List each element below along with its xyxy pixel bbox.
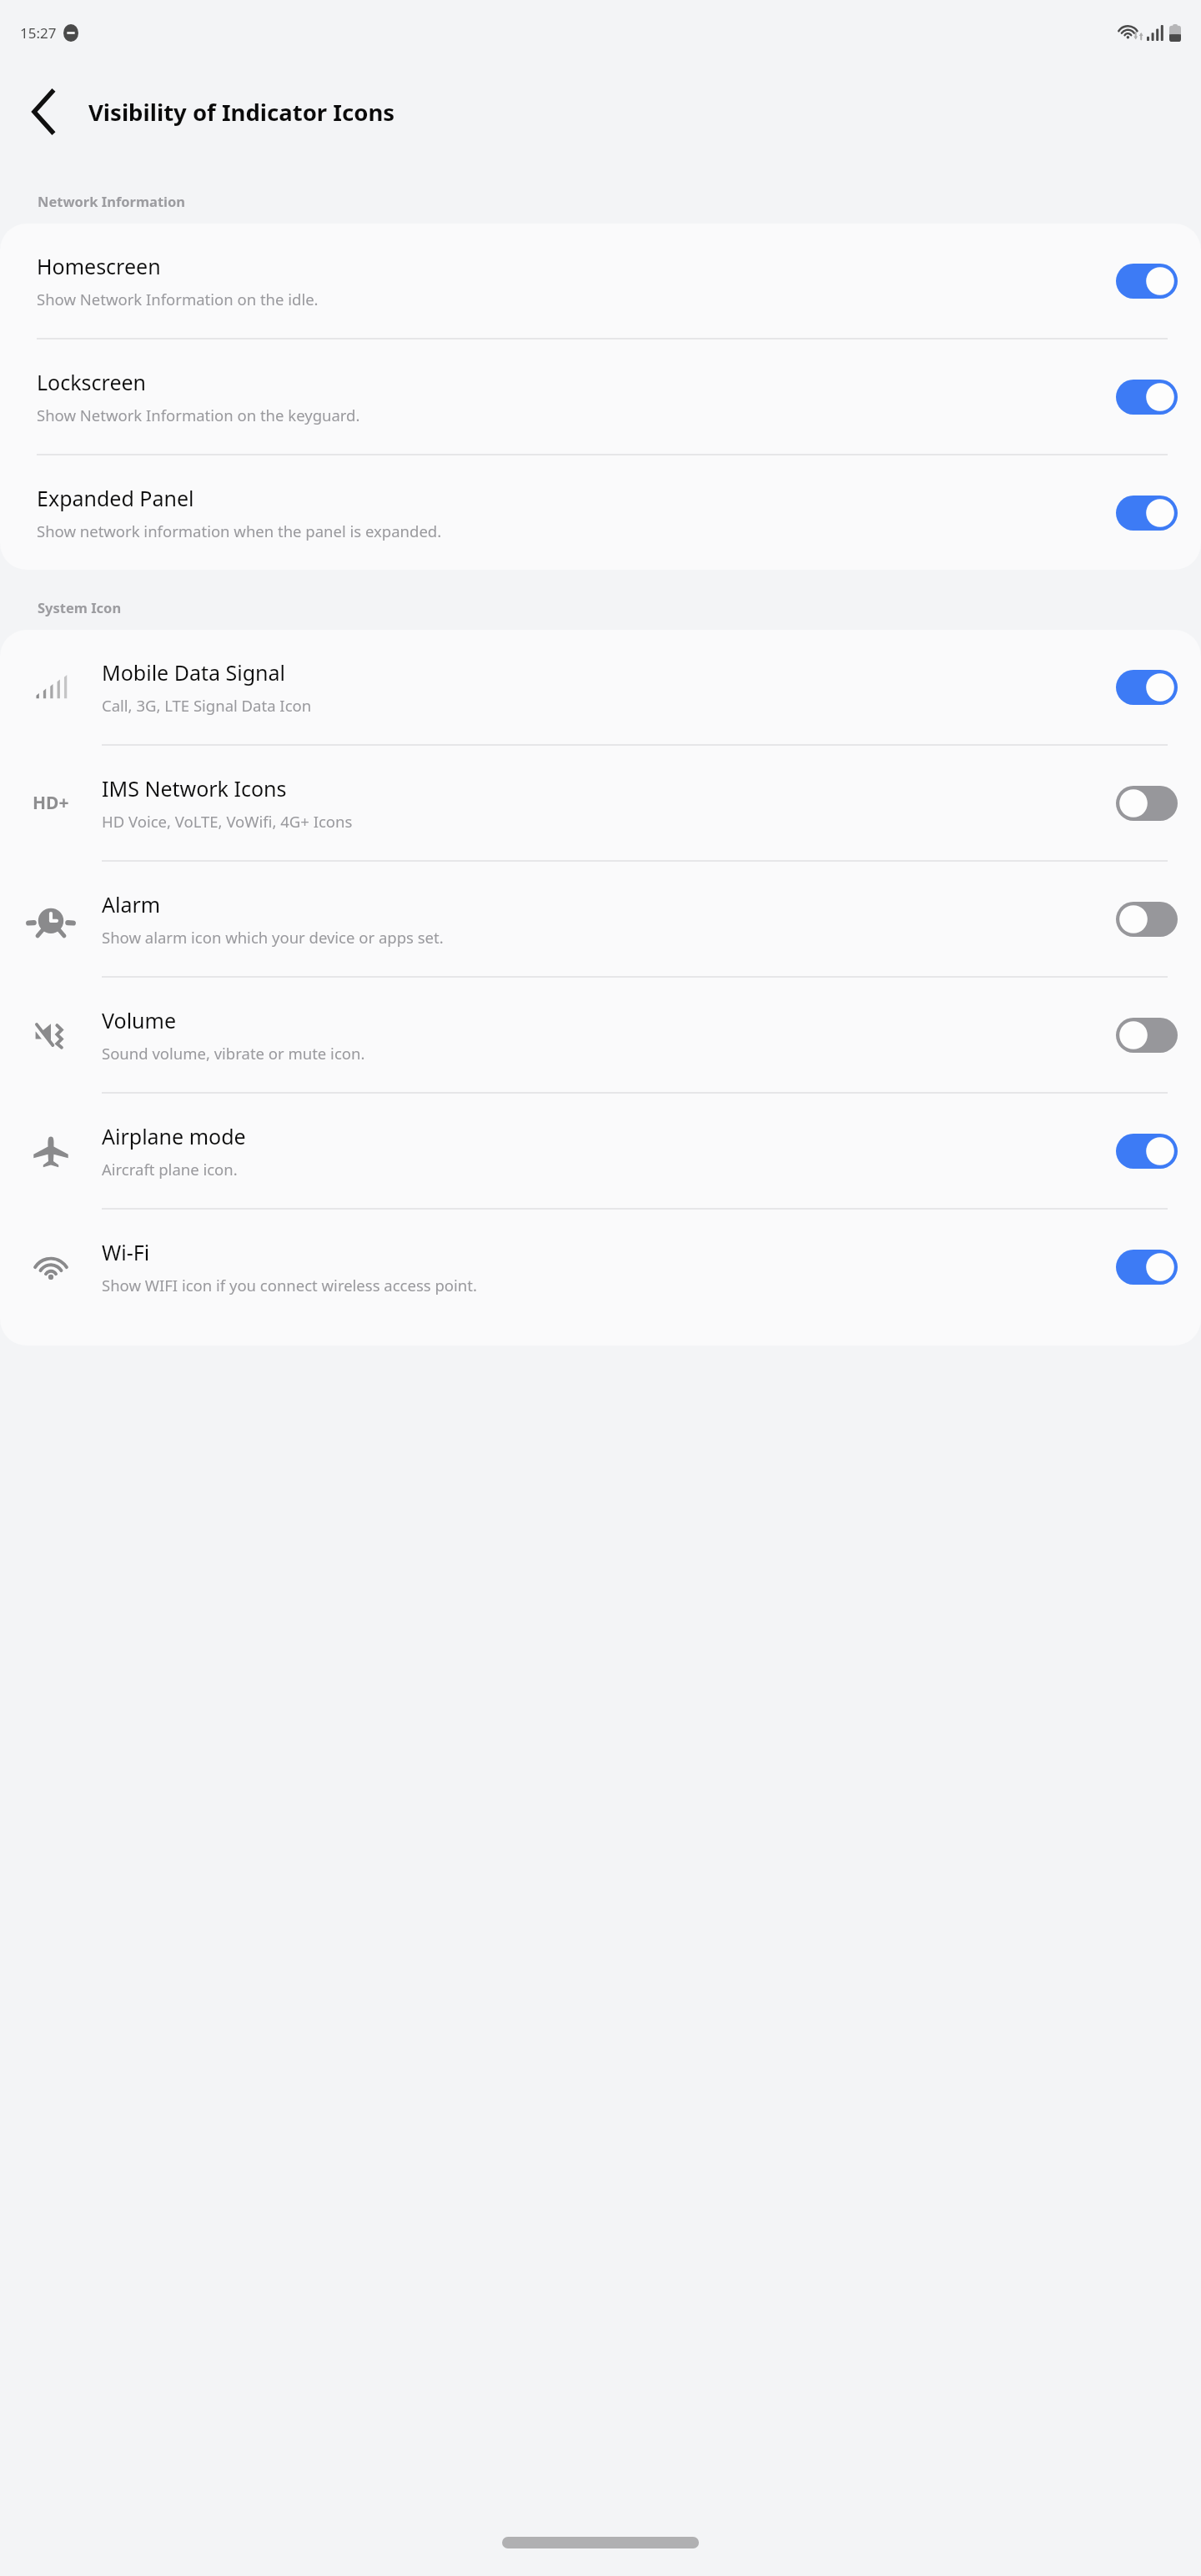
button[interactable]: Back	[0, 68, 88, 156]
staticText: Network Information	[38, 192, 186, 210]
button[interactable]: Expanded Panel on	[1093, 470, 1201, 556]
staticText: Sound volume, vibrate or mute icon.	[102, 1043, 365, 1064]
staticText: HD Voice, VoLTE, VoWifi, 4G+ Icons	[102, 811, 353, 832]
staticText: Mobile Data Signal	[102, 658, 285, 687]
button[interactable]: Homescreen	[0, 224, 1201, 338]
button[interactable]: Wi-Fi	[0, 1210, 1201, 1324]
staticText: Show alarm icon which your device or app…	[102, 927, 444, 948]
staticText: Airplane mode	[102, 1122, 246, 1150]
button[interactable]: Mobile Data Signal on	[1093, 644, 1201, 731]
staticText: System Icon	[38, 598, 122, 616]
staticText: Show WIFI icon if you connect wireless a…	[102, 1275, 477, 1296]
staticText: 15:27	[20, 23, 57, 43]
staticText: Expanded Panel	[37, 484, 194, 512]
staticText: Show network information when the panel …	[37, 521, 442, 541]
button[interactable]: Volume off	[1093, 992, 1201, 1079]
button[interactable]: Expanded Panel	[0, 455, 1201, 570]
staticText: IMS Network Icons	[102, 774, 287, 802]
button[interactable]: Alarm	[0, 862, 1201, 976]
button[interactable]: Homescreen on	[1093, 238, 1201, 325]
button[interactable]: Lockscreen on	[1093, 354, 1201, 440]
staticText: Visibility of Indicator Icons	[88, 97, 395, 128]
button[interactable]: Volume	[0, 978, 1201, 1092]
staticText: Show Network Information on the keyguard…	[37, 405, 360, 425]
staticText: Alarm	[102, 890, 161, 918]
button[interactable]: Airplane mode	[0, 1094, 1201, 1208]
button[interactable]: Alarm off	[1093, 876, 1201, 963]
button[interactable]: Lockscreen	[0, 340, 1201, 454]
staticText: Lockscreen	[37, 368, 147, 396]
staticText: Call, 3G, LTE Signal Data Icon	[102, 695, 312, 716]
button[interactable]: HD+	[0, 746, 1201, 860]
staticText: Show Network Information on the idle.	[37, 289, 319, 309]
button[interactable]: Mobile Data Signal	[0, 630, 1201, 744]
button[interactable]: Wi-Fi on	[1093, 1224, 1201, 1311]
staticText: Volume	[102, 1006, 177, 1034]
staticText: Homescreen	[37, 252, 161, 280]
staticText: Wi-Fi	[102, 1238, 150, 1266]
button[interactable]: IMS Network Icons off	[1093, 760, 1201, 847]
button[interactable]: Airplane mode on	[1093, 1108, 1201, 1195]
staticText: Aircraft plane icon.	[102, 1159, 238, 1180]
staticText: HD+	[33, 791, 69, 815]
